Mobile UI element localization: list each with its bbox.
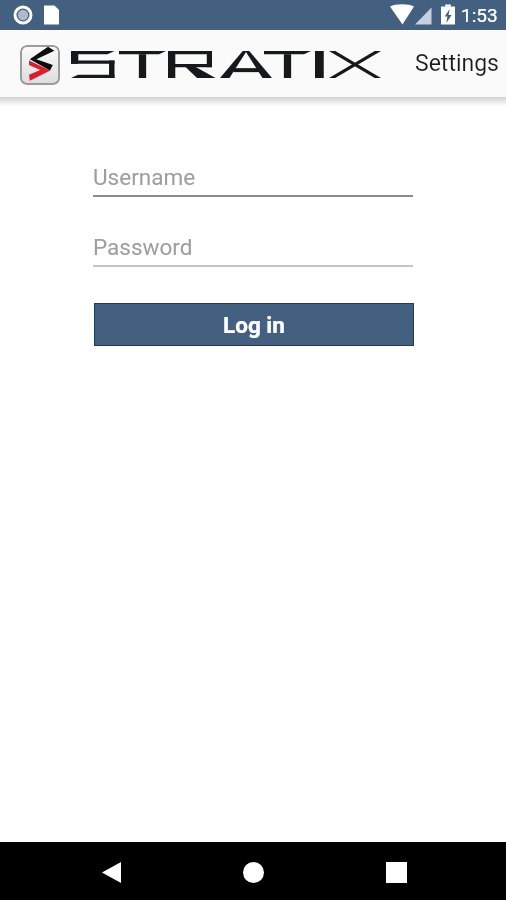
button[interactable]: Settings (401, 38, 506, 89)
staticText: Password (93, 234, 193, 260)
staticText: Log in (223, 312, 285, 338)
button[interactable]: Recent apps (366, 843, 426, 900)
button[interactable]: Home (223, 843, 283, 900)
staticText: Settings (415, 50, 499, 77)
staticText: 1:53 (461, 4, 498, 26)
button[interactable]: Log in (95, 304, 413, 345)
staticText: Username (93, 164, 196, 190)
button[interactable]: Back (81, 843, 141, 900)
